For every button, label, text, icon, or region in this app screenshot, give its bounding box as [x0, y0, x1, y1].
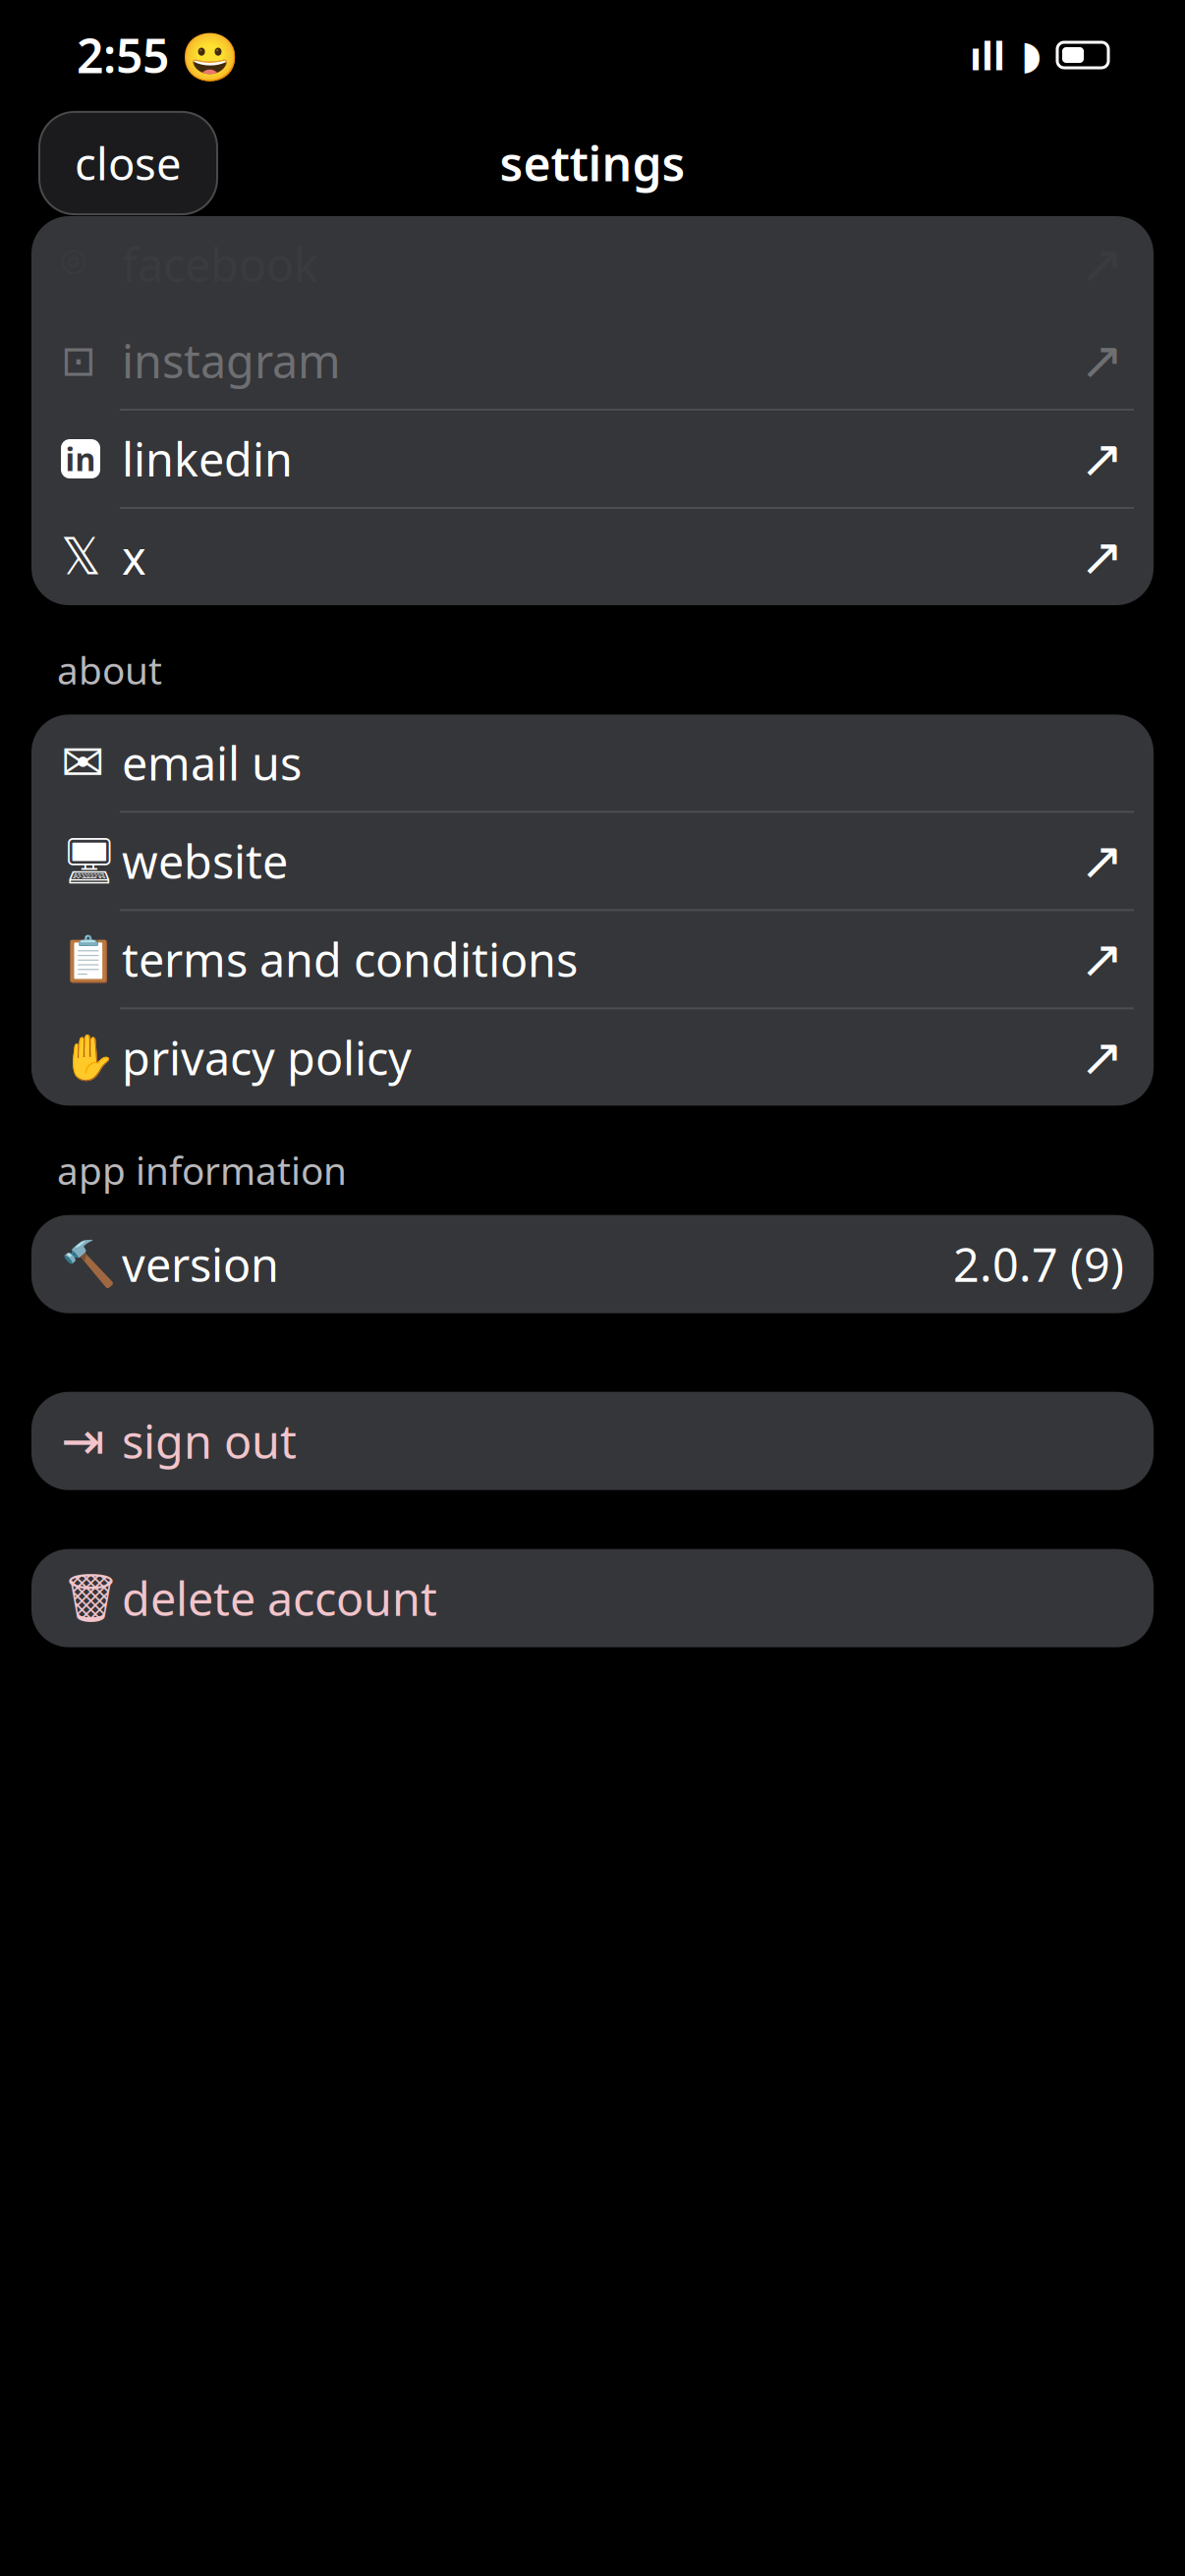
- button[interactable]: close: [39, 112, 217, 214]
- staticText: ↗: [1080, 527, 1124, 587]
- staticText: 𝕏: [61, 529, 101, 585]
- button[interactable]: 🗑: [31, 1549, 1154, 1647]
- button[interactable]: ✋: [31, 1009, 1154, 1106]
- button[interactable]: ⇥: [31, 1392, 1154, 1490]
- staticText: sign out: [122, 1411, 297, 1471]
- staticText: in: [65, 438, 96, 480]
- staticText: ↗: [1080, 930, 1124, 989]
- button[interactable]: ⌾: [31, 216, 1154, 312]
- staticText: delete account: [122, 1568, 437, 1629]
- button[interactable]: 🔨: [31, 1215, 1154, 1313]
- staticText: about: [57, 644, 162, 695]
- staticText: website: [122, 831, 288, 891]
- staticText: ↗: [1080, 1028, 1124, 1087]
- staticText: settings: [500, 132, 685, 194]
- staticText: ✉: [61, 733, 105, 792]
- staticText: ıll: [970, 29, 1005, 81]
- staticText: app information: [57, 1145, 347, 1195]
- staticText: 🔨: [61, 1239, 116, 1290]
- staticText: 2:55 😀: [77, 24, 240, 86]
- staticText: instagram: [122, 330, 341, 391]
- staticText: 🖥: [61, 835, 118, 886]
- staticText: close: [75, 134, 182, 193]
- staticText: 🗑: [61, 1571, 121, 1625]
- staticText: ✋: [61, 1032, 116, 1083]
- staticText: privacy policy: [122, 1027, 412, 1088]
- button[interactable]: ⊡: [31, 312, 1154, 409]
- staticText: 📋: [61, 934, 116, 985]
- staticText: ↗: [1080, 331, 1124, 390]
- button[interactable]: in: [31, 411, 1154, 507]
- staticText: email us: [122, 732, 302, 793]
- button[interactable]: ✉: [31, 715, 1154, 811]
- staticText: ⊡: [61, 337, 96, 384]
- button[interactable]: 🖥: [31, 813, 1154, 909]
- staticText: terms and conditions: [122, 929, 578, 990]
- staticText: 2.0.7 (9): [953, 1234, 1124, 1295]
- staticText: ⇥: [61, 1411, 105, 1471]
- staticText: ◗: [1021, 33, 1042, 77]
- staticText: version: [122, 1234, 279, 1295]
- button[interactable]: 📋: [31, 911, 1154, 1007]
- staticText: ↗: [1080, 429, 1124, 488]
- staticText: linkedin: [122, 428, 293, 489]
- staticText: x: [122, 527, 146, 588]
- button[interactable]: 𝕏: [31, 509, 1154, 605]
- staticText: ↗: [1080, 831, 1124, 891]
